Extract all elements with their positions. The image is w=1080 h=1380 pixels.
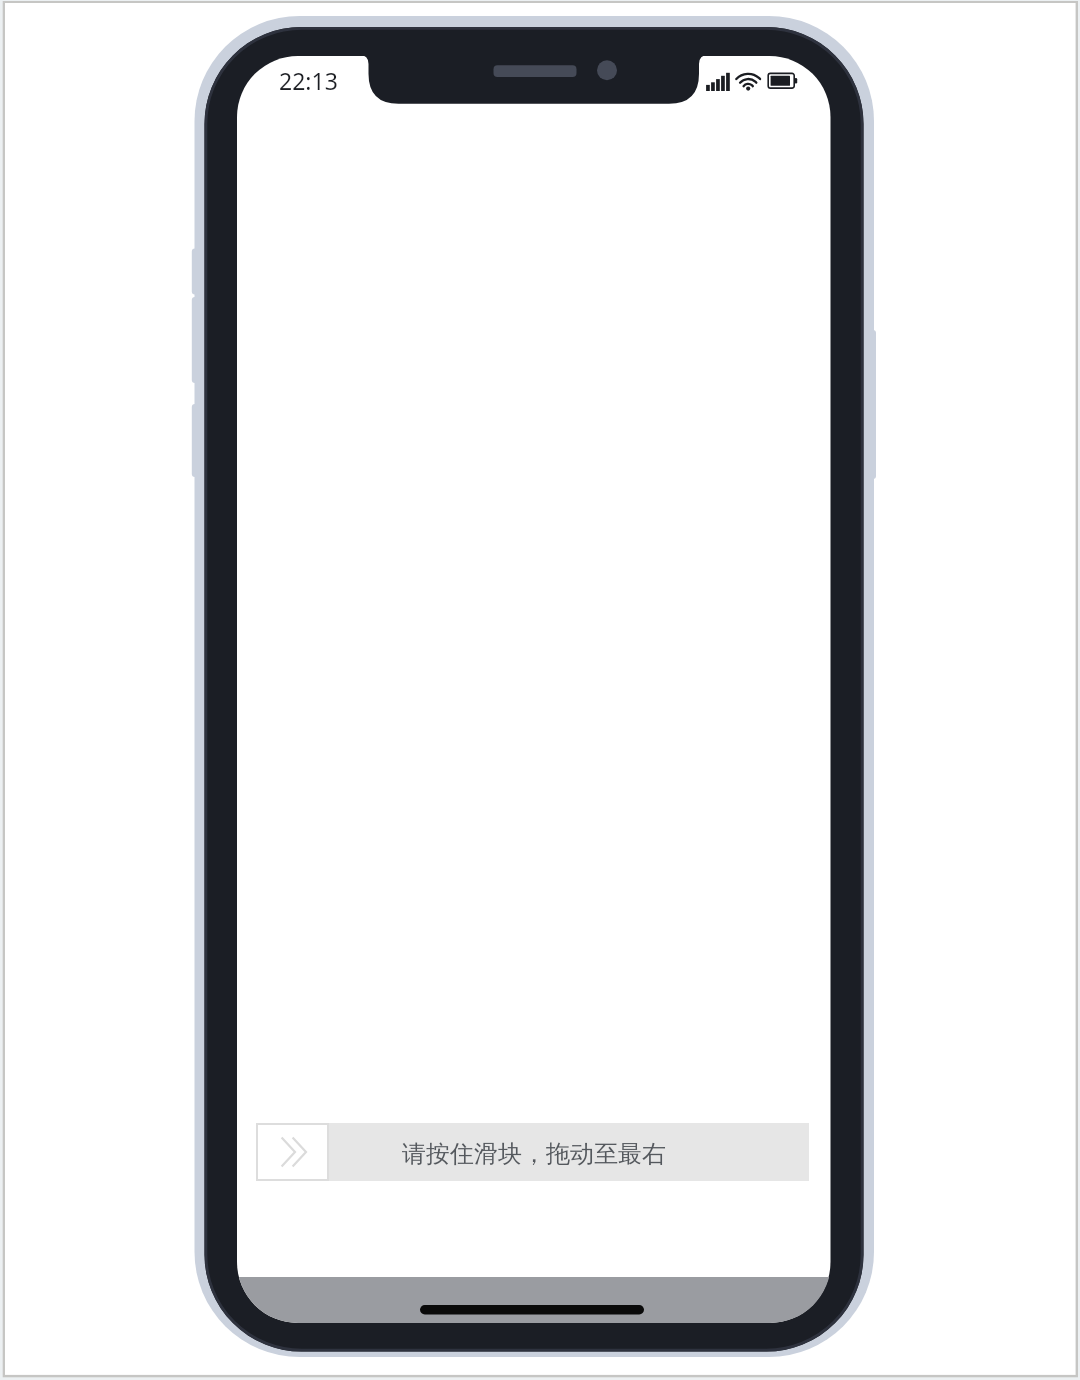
button[interactable]: 请按住滑块，拖动至最右 [256,1123,809,1181]
staticText: 请按住滑块，拖动至最右 [402,1139,666,1169]
other: Signal, Wi-Fi and battery status [700,65,804,99]
staticText: 22:13 [279,65,338,96]
button[interactable]: Drag the slider to the right [256,1123,329,1181]
